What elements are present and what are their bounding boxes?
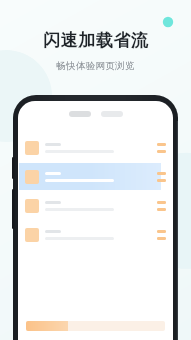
staticText: 畅快体验网页浏览 (56, 60, 135, 72)
button[interactable] (18, 191, 173, 220)
button[interactable] (18, 133, 173, 162)
staticText: 闪速加载省流 (43, 30, 148, 51)
button[interactable] (18, 162, 173, 191)
button[interactable]: Tab one (69, 111, 91, 117)
button[interactable] (18, 220, 173, 249)
button[interactable]: Loading progress (26, 321, 165, 331)
button[interactable]: Tab two (101, 111, 123, 117)
